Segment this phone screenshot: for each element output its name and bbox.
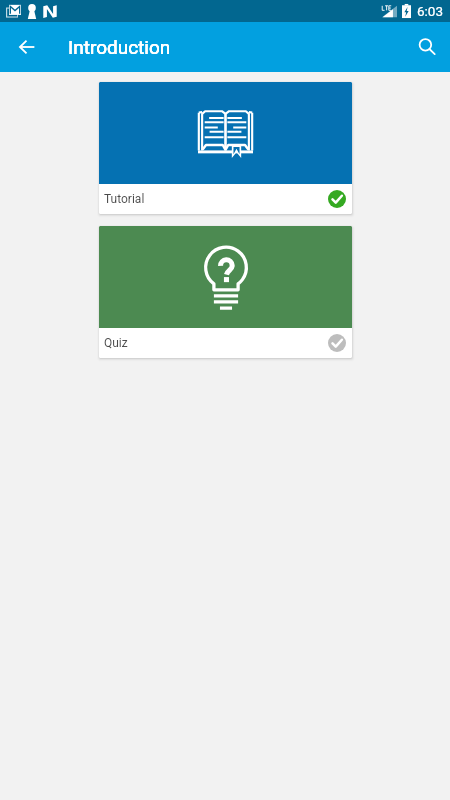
button[interactable]: Back	[0, 22, 53, 72]
staticText: Introduction	[68, 36, 171, 58]
button[interactable]: Search	[404, 22, 450, 72]
staticText: Introduction	[68, 36, 171, 58]
staticText: Tutorial	[104, 192, 145, 206]
button[interactable]: Tutorial	[99, 82, 352, 214]
button[interactable]: Quiz	[99, 226, 352, 358]
staticText: Quiz	[104, 336, 128, 350]
staticText: 6:03	[417, 3, 444, 19]
